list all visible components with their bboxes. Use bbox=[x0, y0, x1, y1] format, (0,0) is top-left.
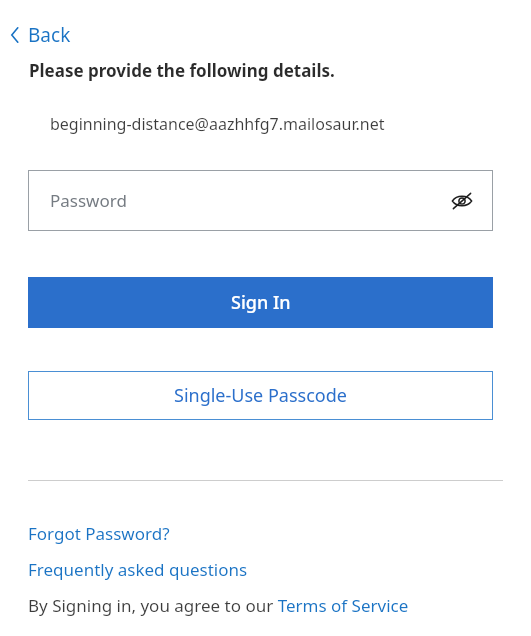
button[interactable]: Forgot Password? bbox=[28, 522, 170, 545]
button[interactable]: Single-Use Passcode bbox=[28, 371, 493, 420]
staticText: Password bbox=[50, 189, 127, 212]
staticText: Please provide the following details. bbox=[29, 59, 335, 82]
staticText: Forgot Password? bbox=[28, 522, 170, 545]
staticText: Single-Use Passcode bbox=[174, 383, 347, 408]
button[interactable]: Show password bbox=[445, 184, 479, 218]
button[interactable]: By Signing in, you agree to our Terms of… bbox=[28, 594, 409, 617]
staticText: By Signing in, you agree to our Terms of… bbox=[28, 594, 409, 617]
staticText: Sign In bbox=[231, 290, 291, 315]
button[interactable]: Sign In bbox=[28, 277, 493, 328]
staticText: Frequently asked questions bbox=[28, 558, 248, 581]
button[interactable]: Password bbox=[28, 170, 493, 231]
button[interactable]: Frequently asked questions bbox=[28, 558, 248, 581]
staticText: beginning-distance@aazhhfg7.mailosaur.ne… bbox=[50, 113, 385, 135]
button[interactable]: Back bbox=[6, 20, 75, 50]
staticText: Back bbox=[28, 22, 71, 48]
